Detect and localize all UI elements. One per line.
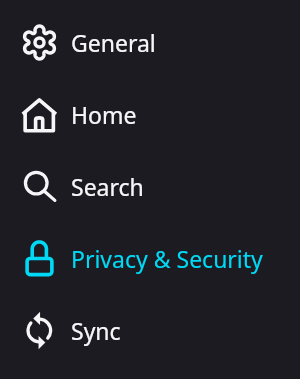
staticText: Sync [71, 315, 121, 346]
staticText: Privacy & Security [71, 243, 263, 274]
button[interactable]: Search [0, 150, 300, 222]
button[interactable]: General [0, 6, 300, 78]
staticText: Search [71, 171, 144, 202]
button[interactable]: Sync [0, 294, 300, 366]
button[interactable]: Home [0, 78, 300, 150]
button[interactable]: Privacy & Security [0, 222, 300, 294]
staticText: General [71, 27, 156, 58]
staticText: Home [71, 99, 137, 130]
